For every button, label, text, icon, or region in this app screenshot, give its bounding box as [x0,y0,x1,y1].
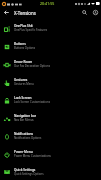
staticText: Decor Room [14,60,33,64]
staticText: Power Menu [14,150,33,154]
staticText: Nav Bar Menus [14,118,34,122]
button[interactable]: Search [79,7,90,18]
button[interactable]: Account [90,7,100,18]
button[interactable]: Gestures [0,73,101,91]
staticText: Gestures Menu [14,82,34,86]
staticText: Notifications Options [14,136,42,140]
staticText: Our Fav Decoration Options [14,64,50,68]
button[interactable]: OnePlus Shit [0,19,101,37]
button[interactable]: Lock Screen [0,91,101,109]
staticText: Lock Screen Customizations [14,100,50,104]
button[interactable]: Notifications [0,127,101,145]
staticText: Buttons [14,42,26,46]
staticText: Notifications [14,132,33,136]
staticText: 20:41:55 [40,1,55,6]
button[interactable]: Buttons [0,37,101,55]
staticText: OnePlus Specific Features [14,28,48,32]
staticText: X-Tensions [14,10,36,16]
button[interactable]: Navigation bar [0,109,101,127]
button[interactable]: Quick Settings [0,163,101,180]
staticText: Quick Settings Options [14,172,44,176]
staticText: Lock Screen [14,96,32,100]
staticText: Gestures [14,78,28,82]
staticText: Buttons Options [14,46,36,50]
staticText: Power Menu Customizations [14,154,51,158]
button[interactable]: Decor Room [0,55,101,73]
button[interactable]: Back [0,7,12,18]
staticText: Quick Settings [14,168,36,172]
staticText: OnePlus Shit [14,24,33,28]
staticText: Navigation bar [14,114,36,118]
button[interactable]: Power Menu [0,145,101,163]
